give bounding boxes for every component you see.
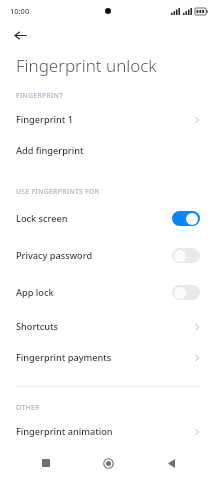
staticText: Fingerprint unlock <box>16 54 157 77</box>
staticText: FINGERPRINT <box>16 91 64 100</box>
staticText: USE FINGERPRINTS FOR <box>16 187 100 196</box>
staticText: Add fingerprint <box>16 144 200 157</box>
staticText: Shortcuts <box>16 320 194 333</box>
staticText: OTHER <box>16 403 40 412</box>
button[interactable]: Privacy password <box>0 237 216 274</box>
button[interactable]: Fingerprint 1 <box>0 104 216 135</box>
button[interactable]: Shortcuts <box>0 311 216 342</box>
button[interactable]: Home <box>91 446 125 480</box>
button[interactable]: Fingerprint animation <box>0 416 216 447</box>
staticText: 10:00 <box>10 6 30 16</box>
button[interactable]: Add fingerprint <box>0 135 216 166</box>
staticText: Fingerprint payments <box>16 351 194 364</box>
staticText: Fingerprint 1 <box>16 113 194 126</box>
staticText: Lock screen <box>16 212 172 225</box>
button[interactable]: Back <box>8 23 32 47</box>
button[interactable]: App lock <box>0 274 216 311</box>
staticText: Privacy password <box>16 249 172 262</box>
button[interactable]: Recents <box>29 446 63 480</box>
staticText: App lock <box>16 286 172 299</box>
staticText: Fingerprint animation <box>16 425 194 438</box>
button[interactable]: Back <box>154 446 188 480</box>
button[interactable]: Lock screen <box>0 200 216 237</box>
button[interactable]: Fingerprint payments <box>0 342 216 373</box>
